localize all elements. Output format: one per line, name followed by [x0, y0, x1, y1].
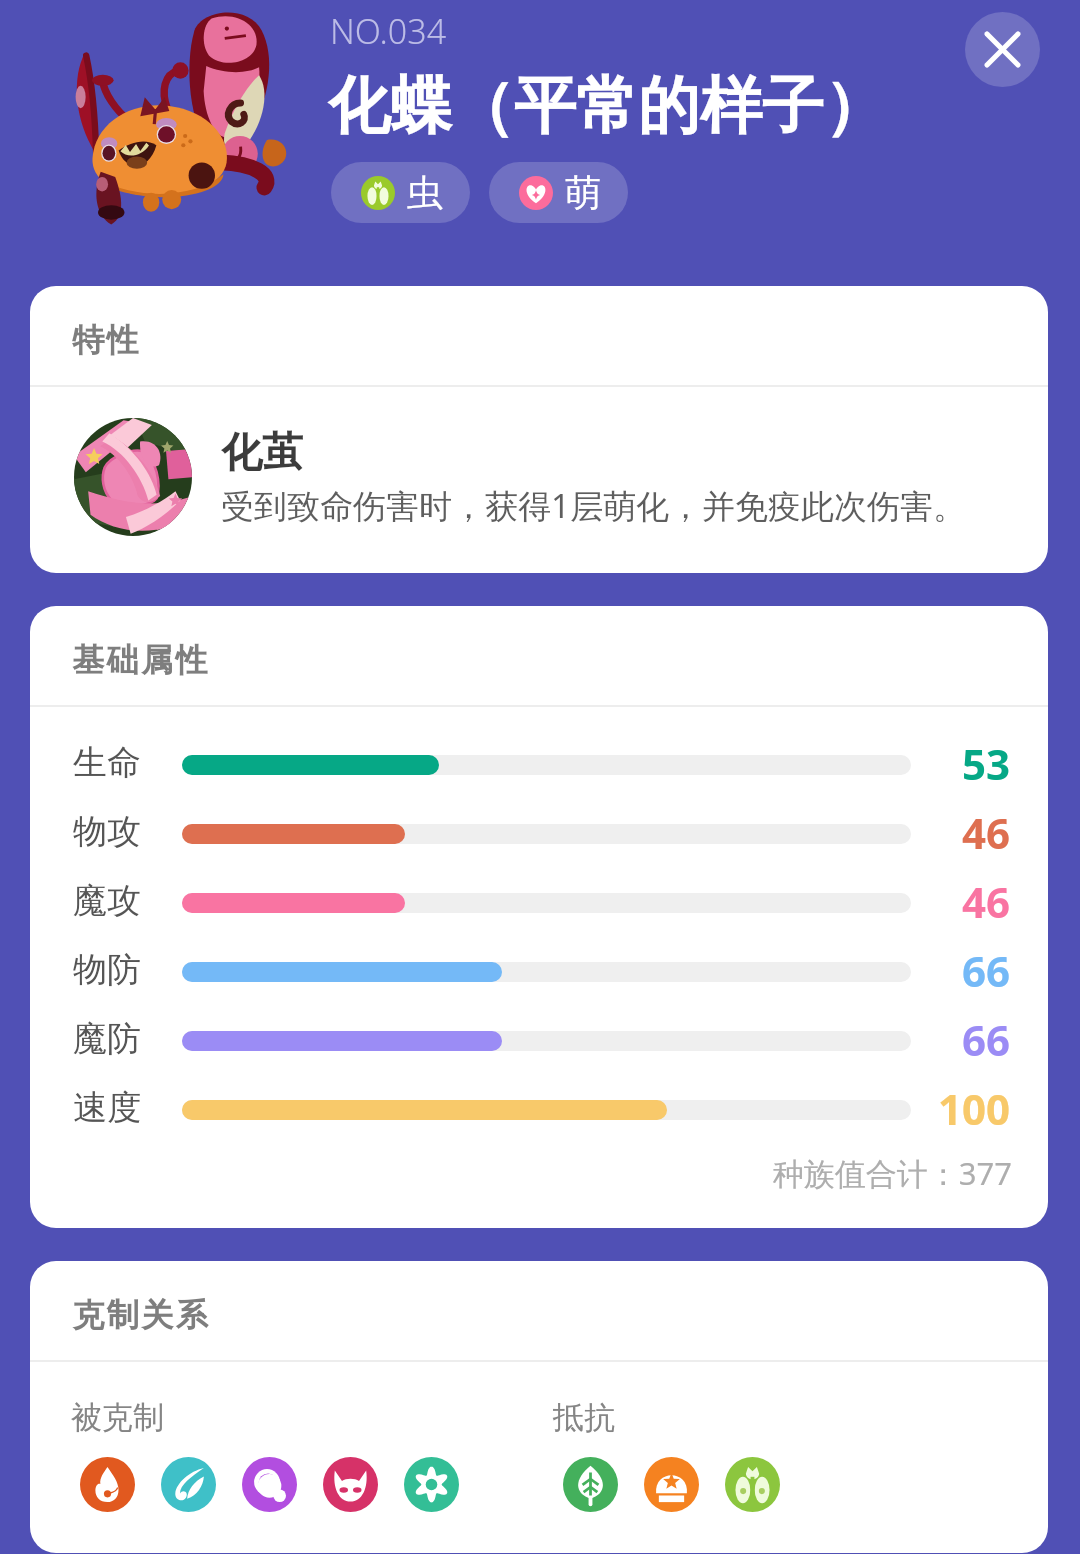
button[interactable]: 飞属性 [161, 1457, 216, 1512]
button[interactable]: 化茧 [30, 387, 1048, 573]
button[interactable]: 机械属性 [404, 1457, 459, 1512]
staticText: 抵抗 [553, 1398, 615, 1437]
staticText: 53 [860, 735, 1010, 792]
staticText: 46 [860, 873, 1010, 930]
button[interactable]: 萌 [489, 162, 628, 223]
staticText: 基础属性 [71, 640, 209, 680]
staticText: 66 [860, 1011, 1010, 1068]
staticText: NO.034 [330, 8, 447, 54]
staticText: 被克制 [71, 1398, 164, 1437]
staticText: 种族值合计：377 [30, 1152, 1012, 1194]
staticText: 魔攻 [73, 879, 141, 922]
button[interactable]: 幻属性 [644, 1457, 699, 1512]
staticText: 46 [860, 804, 1010, 861]
button[interactable]: Close [965, 12, 1040, 87]
button[interactable]: 草属性 [563, 1457, 618, 1512]
staticText: 66 [860, 942, 1010, 999]
button[interactable]: 兽属性 [323, 1457, 378, 1512]
staticText: 速度 [73, 1086, 141, 1129]
button[interactable]: 虫 [331, 162, 470, 223]
staticText: 克制关系 [71, 1295, 209, 1335]
staticText: 虫 [407, 170, 443, 215]
button[interactable]: 灵属性 [242, 1457, 297, 1512]
staticText: 100 [860, 1080, 1010, 1137]
button[interactable]: 火属性 [80, 1457, 135, 1512]
staticText: 特性 [71, 320, 140, 360]
staticText: 生命 [73, 741, 141, 784]
staticText: 萌 [565, 170, 601, 215]
staticText: 化茧 [221, 427, 303, 479]
staticText: 受到致命伤害时，获得1层萌化，并免疫此次伤害。 [221, 483, 966, 528]
staticText: 物攻 [73, 810, 141, 853]
staticText: 魔防 [73, 1017, 141, 1060]
button[interactable]: 虫属性 [725, 1457, 780, 1512]
staticText: 化蝶（平常的样子） [328, 67, 886, 145]
staticText: 物防 [73, 948, 141, 991]
